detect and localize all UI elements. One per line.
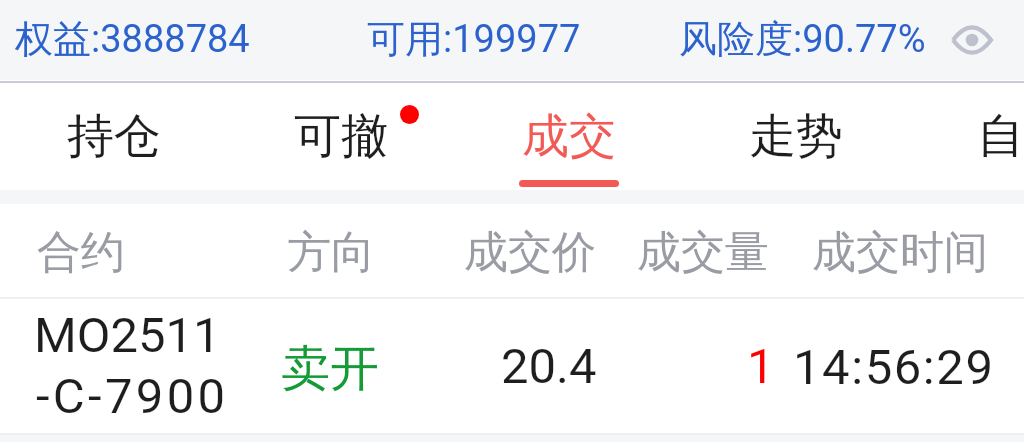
staticText: 14:56:29 [793,339,995,396]
staticText: 权益:3888784 [15,15,250,63]
staticText: 20.4 [501,338,597,395]
staticText: 方向 [287,225,375,280]
staticText: 卖开 [281,338,379,400]
staticText: 持仓 [67,107,161,166]
button[interactable]: 可撤 [269,82,413,190]
button[interactable]: MO2511 [0,299,1024,433]
button[interactable]: Toggle balance visibility [944,12,1000,68]
staticText: 走势 [749,107,843,166]
button[interactable]: 自选 [952,82,1024,190]
button[interactable]: 成交 [497,82,641,190]
button[interactable]: 走势 [724,82,868,190]
staticText: 1 [747,338,775,395]
staticText: 合约 [37,225,125,280]
staticText: 自选 [977,107,1024,166]
staticText: 风险度:90.77% [679,15,926,63]
staticText: 成交价 [464,225,596,280]
button[interactable]: 权益:3888784 [0,0,1024,80]
staticText: 成交 [522,107,616,166]
button[interactable]: 持仓 [42,82,186,190]
staticText: 可用:199977 [367,15,581,63]
staticText: MO2511 [34,307,221,364]
staticText: 成交时间 [812,225,988,280]
staticText: -C-7900 [36,368,229,425]
staticText: 成交量 [637,225,769,280]
staticText: 可撤 [294,107,388,166]
